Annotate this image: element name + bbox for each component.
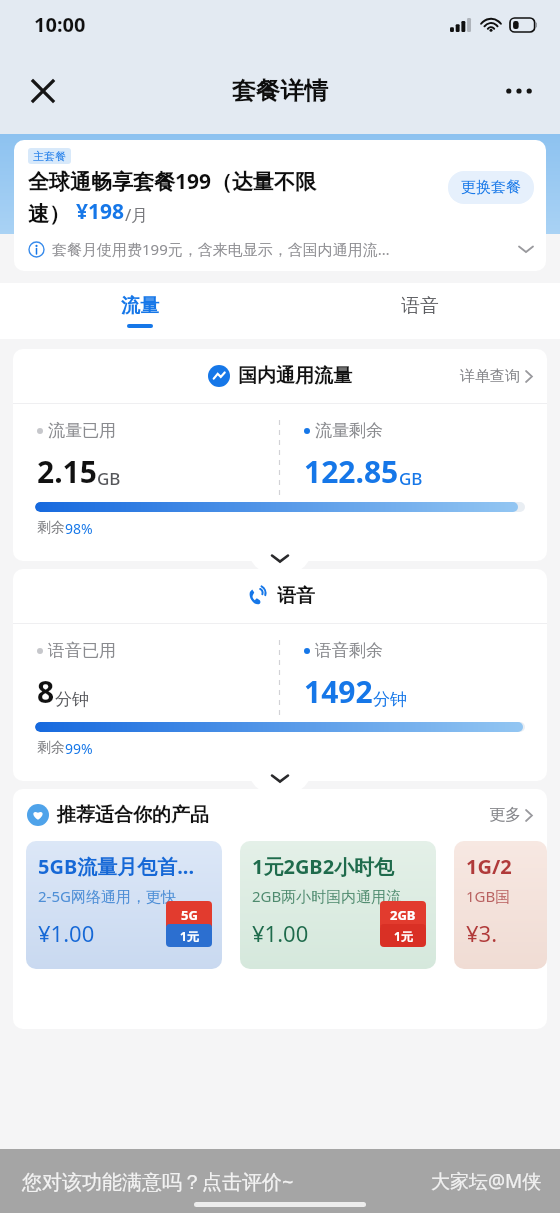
- staticText: 语音剩余: [315, 640, 383, 661]
- staticText: 您对该功能满意吗？点击评价~: [22, 1168, 294, 1195]
- staticText: 大家坛@M侠: [431, 1168, 542, 1194]
- staticText: 推荐适合你的产品: [57, 803, 489, 827]
- staticText: 5GB流量月包首...: [38, 853, 195, 880]
- staticText: 2-5G网络通用，更快: [38, 886, 176, 906]
- button[interactable]: 更多: [489, 805, 533, 825]
- staticText: 语音: [277, 584, 315, 608]
- staticText: 1元: [394, 928, 413, 944]
- button[interactable]: Expand: [248, 548, 312, 574]
- staticText: 8: [37, 671, 55, 712]
- staticText: 2.15: [37, 451, 97, 492]
- staticText: 流量: [121, 294, 159, 318]
- staticText: 1GB国: [466, 886, 511, 906]
- staticText: 1元2GB2小时包: [252, 853, 395, 880]
- button[interactable]: 更换套餐: [448, 171, 534, 204]
- staticText: ¥198: [76, 197, 125, 226]
- button[interactable]: 详单查询: [460, 367, 533, 386]
- button[interactable]: 流量: [0, 283, 280, 339]
- button[interactable]: More options: [496, 68, 542, 114]
- staticText: ¥1.00: [38, 918, 95, 948]
- staticText: 10:00: [34, 11, 86, 38]
- button[interactable]: Expand: [248, 768, 312, 794]
- staticText: 语音已用: [48, 640, 116, 661]
- staticText: 2GB两小时国内通用流: [252, 886, 402, 906]
- staticText: ¥3.: [466, 918, 498, 948]
- staticText: ¥1.00: [252, 918, 309, 948]
- staticText: 语音: [401, 294, 439, 318]
- staticText: 全球通畅享套餐199（达量不限: [28, 167, 317, 196]
- button[interactable]: 语音: [280, 283, 560, 339]
- staticText: 122.85: [304, 451, 399, 492]
- staticText: 主套餐: [33, 149, 66, 163]
- staticText: 更多: [489, 805, 521, 825]
- staticText: 更换套餐: [461, 178, 521, 197]
- staticText: 套餐月使用费199元，含来电显示，含国内通用流…: [52, 239, 512, 259]
- staticText: 98%: [65, 519, 93, 538]
- staticText: GB: [399, 467, 423, 490]
- staticText: 速）: [28, 201, 70, 227]
- staticText: 流量剩余: [315, 420, 383, 441]
- staticText: GB: [97, 467, 121, 490]
- staticText: 1492: [304, 671, 373, 712]
- staticText: 分钟: [373, 689, 407, 710]
- staticText: 分钟: [55, 689, 89, 710]
- button[interactable]: 您对该功能满意吗？点击评价~: [0, 1149, 560, 1213]
- staticText: 流量已用: [48, 420, 116, 441]
- staticText: 1元: [180, 928, 199, 944]
- staticText: 套餐详情: [232, 76, 328, 106]
- button[interactable]: Close: [20, 68, 66, 114]
- staticText: 99%: [65, 739, 93, 758]
- button[interactable]: 主套餐: [14, 140, 546, 271]
- staticText: 5G: [181, 906, 198, 924]
- button[interactable]: 1G/2: [454, 841, 547, 969]
- button[interactable]: 5GB流量月包首...: [26, 841, 222, 969]
- button[interactable]: 套餐月使用费199元，含来电显示，含国内通用流…: [28, 239, 534, 259]
- button[interactable]: 1元2GB2小时包: [240, 841, 436, 969]
- staticText: 详单查询: [460, 367, 520, 386]
- staticText: 1G/2: [466, 853, 512, 880]
- staticText: 剩余: [37, 519, 65, 537]
- staticText: 2GB: [390, 906, 416, 924]
- staticText: /月: [125, 203, 149, 226]
- staticText: 国内通用流量: [238, 364, 352, 388]
- staticText: 剩余: [37, 739, 65, 757]
